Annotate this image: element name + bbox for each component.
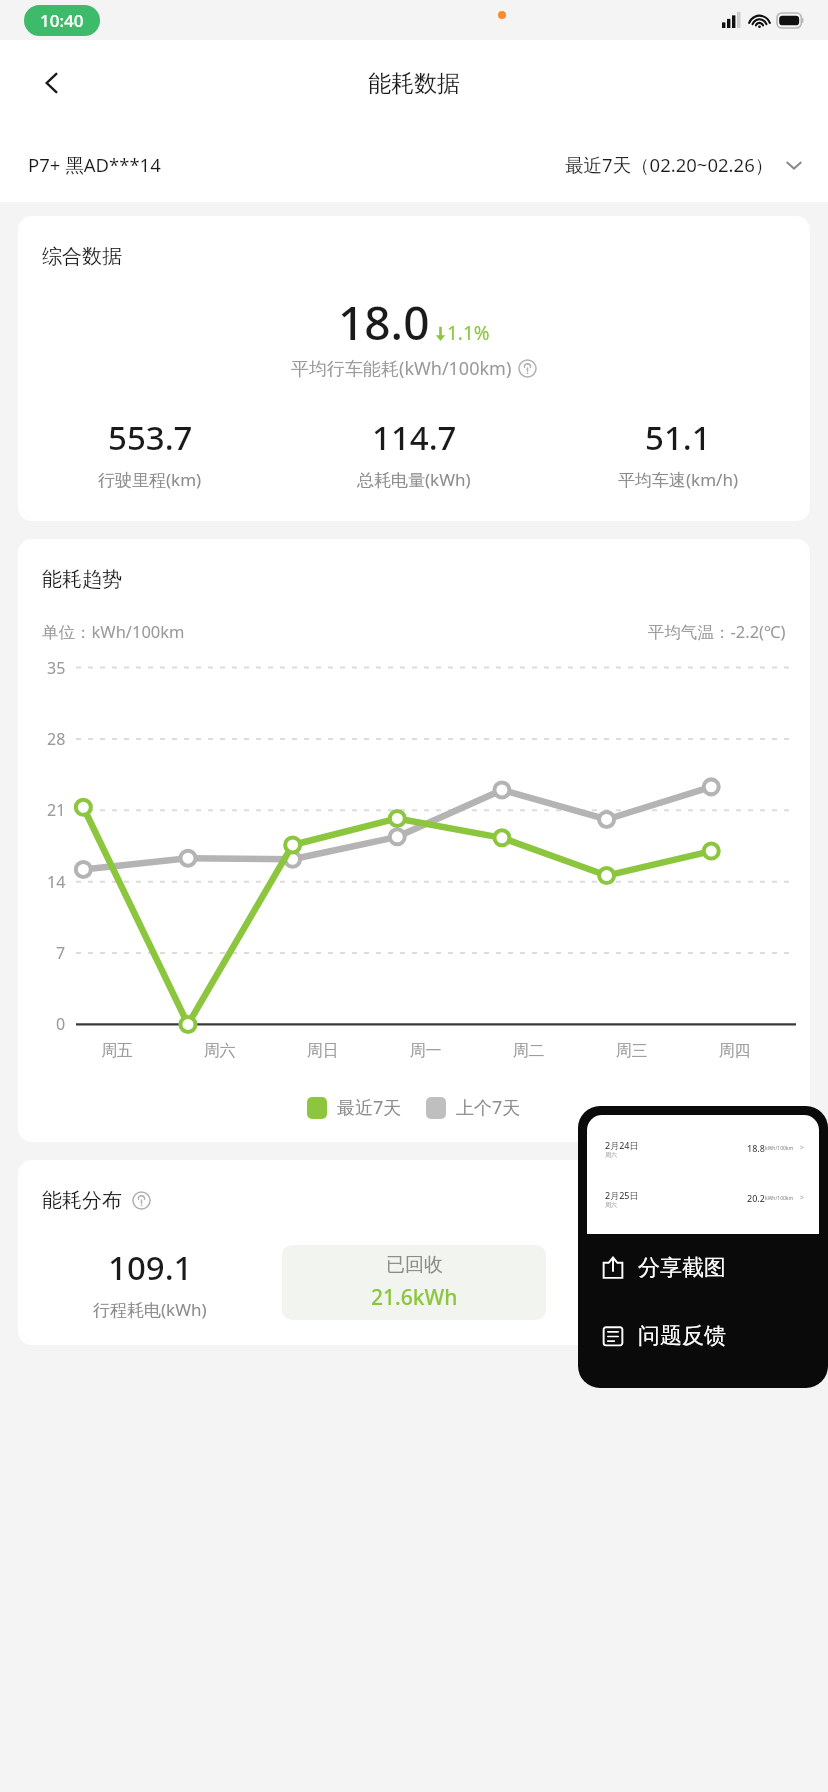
button[interactable]: 553.7 — [18, 415, 282, 491]
button[interactable]: 已回收 — [282, 1245, 546, 1320]
staticText: 109.1 — [108, 1245, 193, 1290]
staticText: 周四 — [683, 1041, 786, 1061]
button[interactable]: Back — [28, 59, 76, 107]
staticText: 2月25日 — [605, 1189, 639, 1201]
button[interactable]: 分享截图 — [578, 1234, 828, 1302]
staticText: 上个7天 — [456, 1095, 521, 1120]
staticText: 2月24日 — [605, 1139, 639, 1151]
staticText: 10:40 — [40, 9, 84, 32]
staticText: 行驶里程(km) — [98, 468, 202, 491]
staticText: > — [800, 1193, 805, 1203]
button[interactable]: 最近7天（02.20~02.26） — [565, 152, 804, 177]
staticText: 分享截图 — [638, 1254, 726, 1282]
button[interactable]: 综合数据 — [18, 216, 810, 521]
staticText: 行程耗电(kWh) — [93, 1298, 207, 1321]
staticText: 51.1 — [645, 415, 711, 460]
other: Info — [132, 1191, 151, 1210]
staticText: 能耗数据 — [368, 69, 460, 98]
other: Expand — [784, 155, 804, 175]
staticText: 18.0 — [338, 291, 430, 354]
staticText: kWh/100km — [765, 1145, 794, 1152]
staticText: 21.6kWh — [371, 1283, 458, 1312]
staticText: 最近7天（02.20~02.26） — [565, 152, 774, 177]
staticText: 问题反馈 — [638, 1322, 726, 1350]
staticText: 能耗分布 — [42, 1188, 122, 1213]
staticText: 7 — [56, 942, 66, 964]
staticText: > — [800, 1143, 805, 1153]
button[interactable]: 能耗趋势 — [18, 539, 810, 1142]
staticText: 周日 — [271, 1041, 374, 1061]
staticText: 18.8 — [747, 1142, 765, 1154]
staticText: 0 — [56, 1013, 66, 1035]
staticText: 28 — [47, 728, 66, 750]
staticText: 总耗电量(kWh) — [357, 468, 471, 491]
staticText: 能耗趋势 — [42, 567, 122, 592]
staticText: 最近7天 — [337, 1095, 402, 1120]
staticText: 20.2 — [747, 1192, 765, 1204]
staticText: 周六 — [605, 1151, 617, 1159]
staticText: 14 — [47, 871, 66, 893]
staticText: 单位：kWh/100km — [42, 620, 185, 643]
staticText: 周六 — [605, 1201, 617, 1209]
staticText: 周一 — [374, 1041, 477, 1061]
staticText: 553.7 — [108, 415, 193, 460]
staticText: 周三 — [580, 1041, 683, 1061]
staticText: 1.1% — [447, 320, 490, 346]
button[interactable]: 51.1 — [546, 415, 810, 491]
staticText: kWh/100km — [765, 1195, 794, 1202]
button[interactable]: 114.7 — [282, 415, 546, 491]
staticText: 周五 — [66, 1041, 168, 1061]
staticText: 平均气温：-2.2(℃) — [648, 620, 786, 643]
staticText: 周二 — [477, 1041, 580, 1061]
button[interactable]: P7+ 黑AD***14 — [28, 152, 161, 177]
staticText: 已回收 — [386, 1253, 443, 1277]
staticText: 综合数据 — [42, 244, 122, 269]
other: Info — [518, 359, 537, 378]
staticText: 平均行车能耗(kWh/100km) — [291, 356, 512, 381]
staticText: 5.6 — [655, 1245, 702, 1290]
staticText: 21 — [47, 799, 66, 821]
staticText: 114.7 — [372, 415, 457, 460]
button[interactable]: 问题反馈 — [578, 1302, 828, 1370]
staticText: 平均车速(km/h) — [618, 468, 739, 491]
staticText: 35 — [47, 657, 66, 679]
button[interactable]: 能耗分布 — [18, 1160, 810, 1345]
staticText: 周六 — [168, 1041, 271, 1061]
